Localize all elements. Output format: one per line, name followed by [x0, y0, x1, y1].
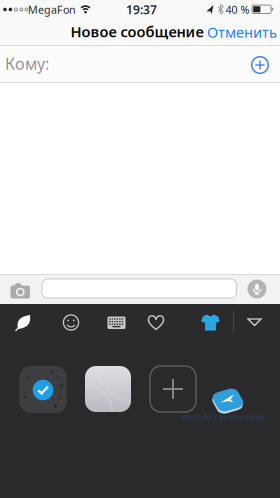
button[interactable] — [6, 305, 40, 339]
button[interactable] — [244, 276, 270, 302]
button[interactable] — [139, 305, 173, 339]
staticText: 19:37 — [126, 1, 157, 17]
button[interactable] — [99, 305, 133, 339]
staticText: mobile-review.com — [181, 411, 264, 423]
button[interactable] — [246, 51, 274, 79]
button[interactable] — [193, 305, 227, 339]
button[interactable]: Отменить — [194, 18, 280, 46]
staticText: MegaFon — [28, 2, 76, 17]
button[interactable] — [85, 366, 131, 412]
button[interactable] — [237, 305, 271, 339]
staticText: 40 % — [225, 2, 249, 17]
button[interactable] — [150, 366, 196, 412]
staticText: Новое сообщение — [70, 22, 203, 41]
staticText: Кому: — [5, 53, 49, 74]
button[interactable] — [54, 305, 88, 339]
button[interactable] — [213, 385, 243, 415]
button[interactable] — [5, 277, 35, 303]
button[interactable] — [42, 279, 236, 298]
staticText: Отменить — [207, 22, 277, 42]
button[interactable] — [19, 366, 66, 413]
